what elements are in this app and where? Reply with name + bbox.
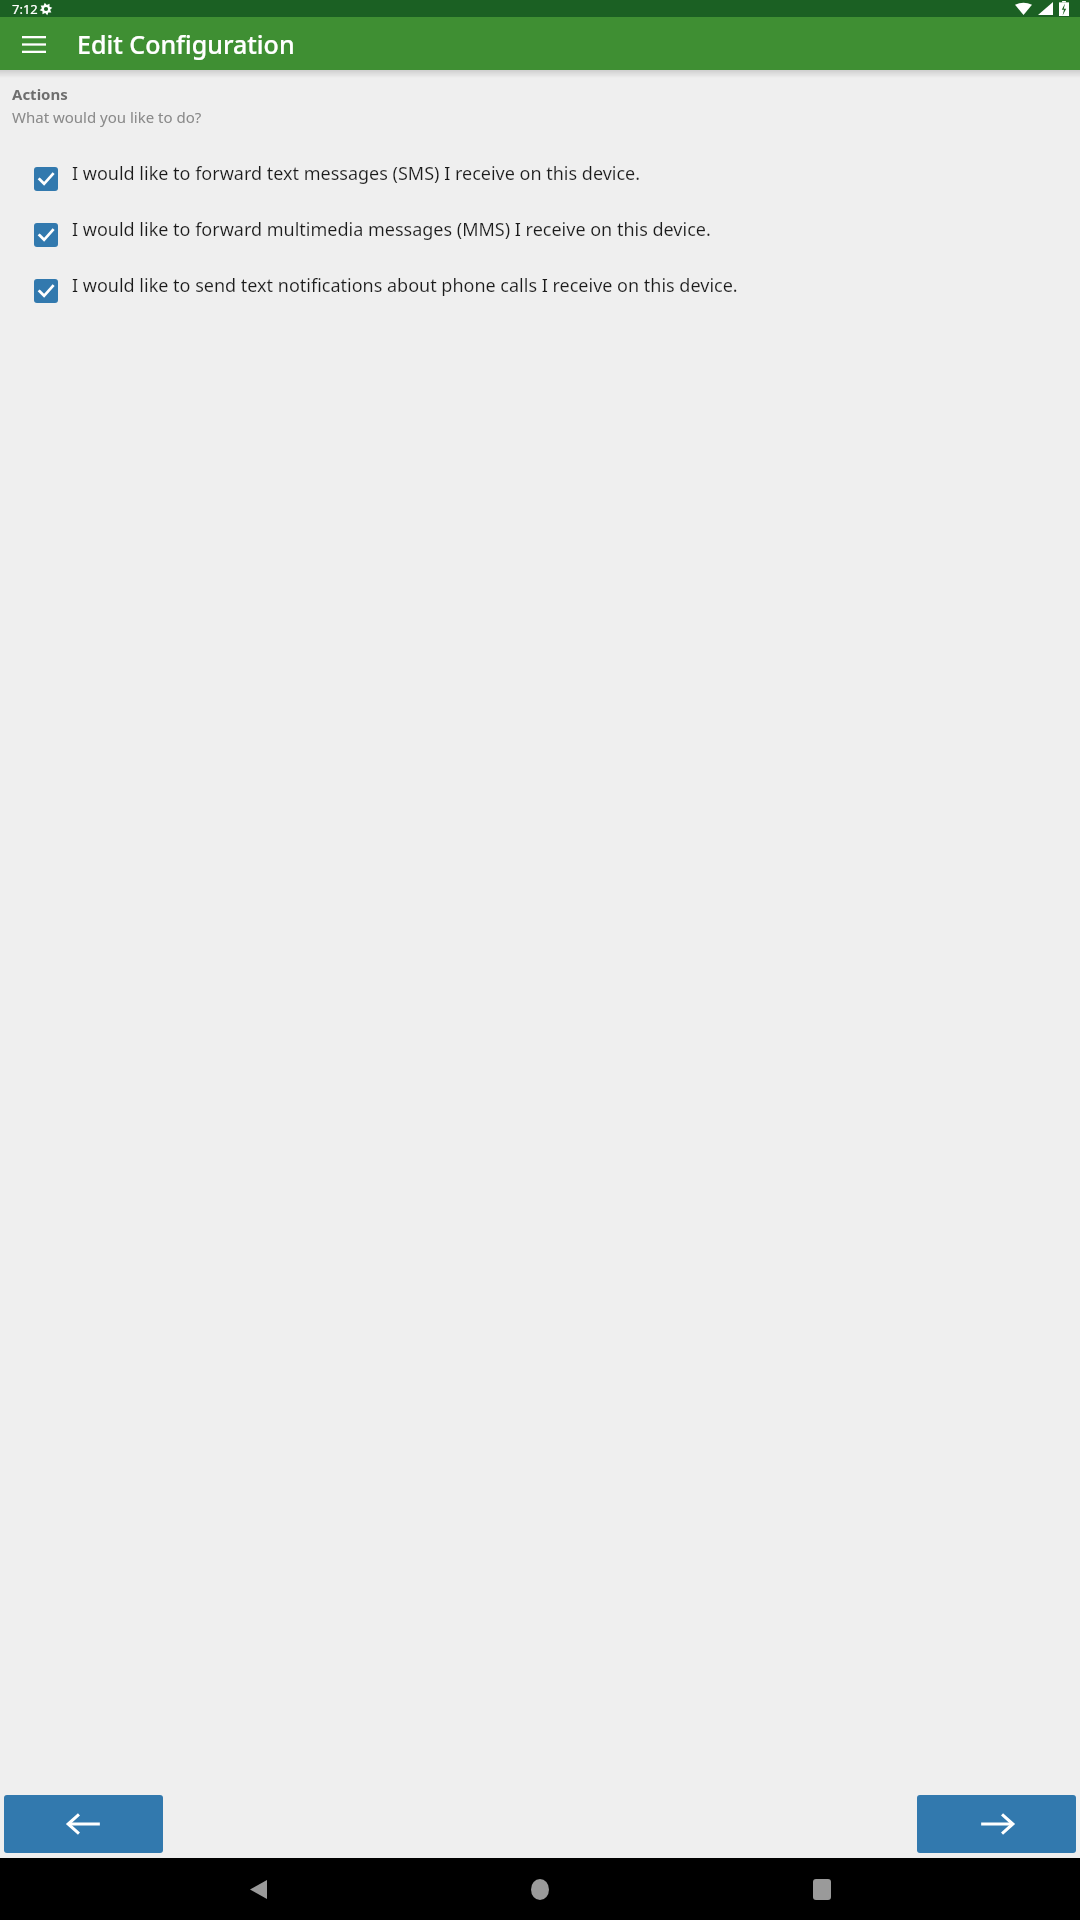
- staticText: What would you like to do?: [12, 107, 202, 127]
- button[interactable]: Back: [234, 1865, 282, 1913]
- button[interactable]: I would like to forward multimedia messa…: [34, 215, 1026, 271]
- staticText: I would like to forward multimedia messa…: [72, 217, 711, 242]
- button[interactable]: I would like to send text notifications …: [34, 271, 1026, 327]
- button[interactable]: I would like to forward text messages (S…: [34, 159, 1026, 215]
- button[interactable]: Back: [4, 1795, 163, 1853]
- staticText: Actions: [12, 84, 68, 104]
- staticText: Edit Configuration: [77, 27, 295, 61]
- staticText: I would like to forward text messages (S…: [72, 161, 641, 186]
- button[interactable]: Home: [516, 1865, 564, 1913]
- button[interactable]: Next: [917, 1795, 1076, 1853]
- staticText: I would like to send text notifications …: [72, 273, 738, 298]
- button[interactable]: Recent apps: [798, 1865, 846, 1913]
- staticText: 7:12: [12, 0, 38, 17]
- button[interactable]: Open navigation menu: [14, 24, 54, 64]
